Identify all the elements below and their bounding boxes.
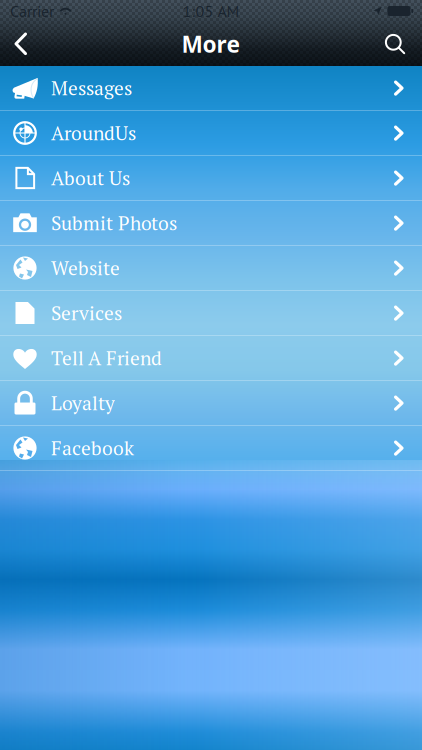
button[interactable]: Website <box>0 246 422 290</box>
staticText: AroundUs <box>51 120 136 146</box>
staticText: Website <box>51 255 120 281</box>
button[interactable]: Search <box>363 23 422 65</box>
button[interactable]: Submit Photos <box>0 201 422 245</box>
staticText: Loyalty <box>51 390 115 416</box>
staticText: Submit Photos <box>51 210 177 236</box>
staticText: Tell A Friend <box>51 345 162 371</box>
staticText: Messages <box>51 75 132 101</box>
button[interactable]: Loyalty <box>0 381 422 425</box>
staticText: About Us <box>51 165 130 191</box>
staticText: Carrier <box>10 1 54 21</box>
staticText: 1:05 AM <box>182 1 239 21</box>
staticText: Services <box>51 300 122 326</box>
button[interactable]: Services <box>0 291 422 335</box>
button[interactable]: About Us <box>0 156 422 200</box>
button[interactable]: Messages <box>0 66 422 110</box>
button[interactable]: Tell A Friend <box>0 336 422 380</box>
button[interactable]: Back <box>0 23 46 65</box>
button[interactable]: AroundUs <box>0 111 422 155</box>
staticText: Facebook <box>51 435 134 461</box>
staticText: More <box>181 29 240 59</box>
button[interactable]: Facebook <box>0 426 422 470</box>
